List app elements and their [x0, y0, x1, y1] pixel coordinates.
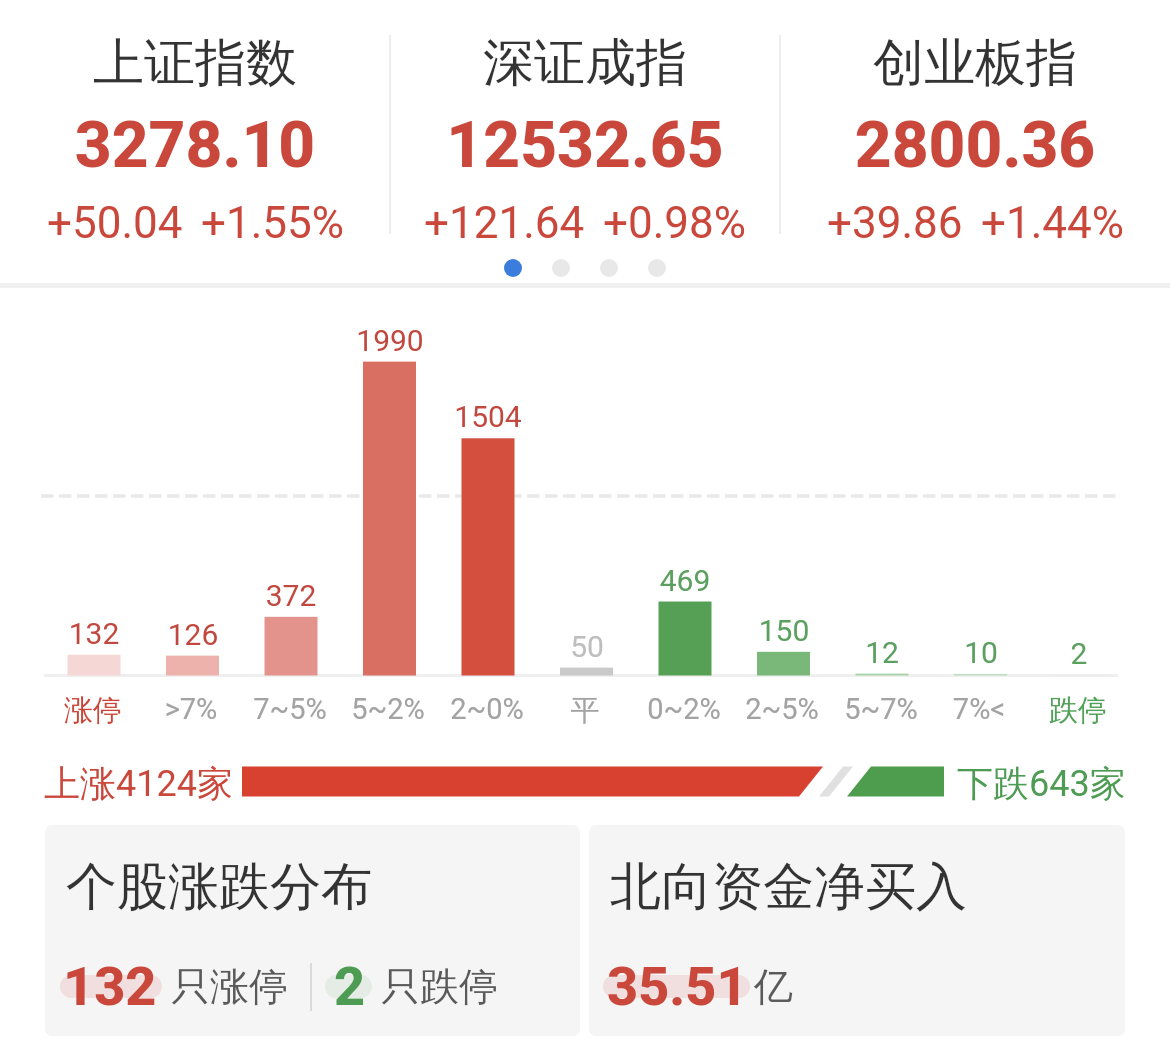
button[interactable]: Page 1 — [504, 259, 522, 277]
staticText: 35.51 — [607, 955, 748, 1018]
staticText: 2800.36 — [780, 108, 1170, 183]
staticText: 亿 — [754, 962, 793, 1011]
staticText: 下跌643家 — [957, 761, 1126, 806]
staticText: +121.64 — [424, 197, 585, 249]
staticText: 2~5% — [722, 692, 842, 726]
staticText: 创业板指 — [780, 31, 1170, 95]
button[interactable]: 上涨4124家 — [0, 758, 1170, 804]
staticText: 2~0% — [427, 692, 547, 726]
button[interactable]: Page 2 — [552, 259, 570, 277]
staticText: 50 — [527, 629, 647, 664]
staticText: 10 — [921, 635, 1041, 670]
staticText: 2 — [1019, 636, 1139, 671]
button[interactable]: 北向资金净买入 — [589, 825, 1125, 1036]
staticText: 2 — [334, 955, 366, 1018]
staticText: 个股涨跌分布 — [66, 855, 372, 919]
button[interactable]: 上证指数 — [0, 0, 390, 75]
staticText: 12532.65 — [390, 108, 780, 183]
staticText: 5~7% — [821, 692, 941, 726]
staticText: 7~5% — [230, 692, 350, 726]
staticText: +50.04 — [47, 197, 183, 249]
staticText: 5~2% — [328, 692, 448, 726]
staticText: 469 — [625, 563, 745, 598]
staticText: 深证成指 — [390, 31, 780, 95]
staticText: 372 — [231, 578, 351, 613]
staticText: 平 — [525, 692, 645, 729]
staticText: +0.98% — [603, 197, 746, 249]
staticText: 132 — [63, 955, 157, 1018]
staticText: >7% — [131, 692, 251, 726]
staticText: 132 — [34, 616, 154, 651]
button[interactable]: 个股涨跌分布柱状图 — [0, 290, 1170, 730]
staticText: 上证指数 — [0, 31, 390, 95]
staticText: 北向资金净买入 — [610, 855, 967, 919]
staticText: 3278.10 — [0, 108, 390, 183]
button[interactable]: 个股涨跌分布 — [45, 825, 580, 1036]
staticText: +39.86 — [827, 197, 963, 249]
staticText: 7%< — [919, 692, 1039, 726]
staticText: 126 — [133, 617, 253, 652]
staticText: 12 — [822, 635, 942, 670]
staticText: 0~2% — [624, 692, 744, 726]
staticText: 只跌停 — [381, 962, 498, 1011]
button[interactable]: Page 4 — [648, 259, 666, 277]
staticText: 150 — [724, 613, 844, 648]
button[interactable]: 深证成指 — [390, 0, 780, 75]
staticText: 1990 — [330, 323, 450, 358]
staticText: 只涨停 — [171, 962, 288, 1011]
button[interactable]: 创业板指 — [780, 0, 1170, 75]
button[interactable]: Page 3 — [600, 259, 618, 277]
staticText: 上涨4124家 — [44, 761, 233, 806]
staticText: 涨停 — [33, 692, 153, 729]
staticText: +1.44% — [981, 197, 1124, 249]
staticText: +1.55% — [201, 197, 344, 249]
staticText: 跌停 — [1018, 692, 1138, 729]
staticText: 1504 — [428, 399, 548, 434]
